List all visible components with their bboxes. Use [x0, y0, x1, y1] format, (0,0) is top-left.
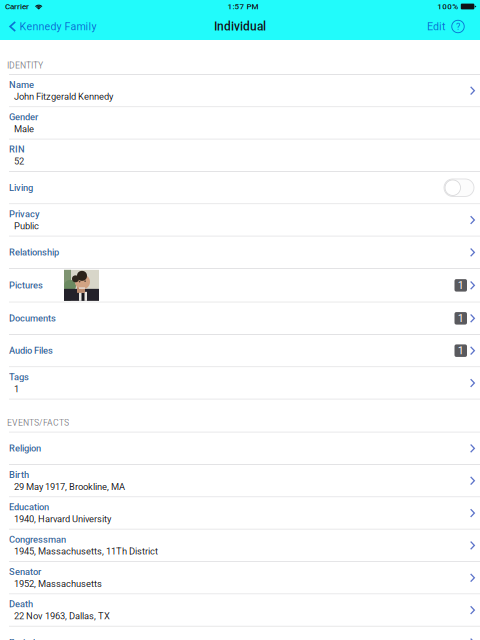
staticText: Carrier [5, 2, 29, 11]
button[interactable]: Audio Files [0, 335, 480, 366]
staticText: Birth [9, 469, 29, 480]
button[interactable]: Relationship [0, 237, 480, 268]
staticText: Relationship [9, 247, 59, 258]
staticText: Pictures [9, 280, 43, 291]
staticText: 1940, Harvard University [14, 514, 111, 524]
staticText: Audio Files [9, 345, 53, 356]
staticText: 29 May 1917, Brookline, MA [14, 481, 125, 492]
staticText: 1 [458, 312, 464, 325]
staticText: Edit [427, 20, 445, 33]
staticText: Buried [9, 637, 35, 640]
button[interactable]: Tags [0, 367, 480, 399]
button[interactable]: Education [0, 497, 480, 529]
staticText: Kennedy Family [19, 20, 96, 33]
staticText: Religion [9, 443, 41, 454]
button[interactable]: Edit [427, 14, 445, 39]
button[interactable]: Senator [0, 562, 480, 593]
staticText: 52 [14, 156, 24, 167]
staticText: Name [9, 79, 34, 90]
staticText: Privacy [9, 209, 40, 219]
staticText: IDENTITY [7, 60, 43, 71]
staticText: Gender [9, 112, 38, 122]
staticText: 1952, Massachusetts [14, 578, 102, 589]
button[interactable]: Help [451, 19, 465, 33]
staticText: 1 [458, 279, 464, 292]
staticText: Education [9, 502, 49, 512]
staticText: 22 Nov 1963, Dallas, TX [14, 611, 110, 621]
staticText: Individual [214, 19, 266, 34]
staticText: 1 [458, 344, 464, 357]
staticText: RIN [9, 144, 25, 155]
button[interactable]: Congressman [0, 530, 480, 561]
staticText: 100% [437, 2, 458, 11]
button[interactable]: Death [0, 594, 480, 626]
staticText: 1:57 PM [228, 2, 259, 11]
staticText: John Fitzgerald Kennedy [14, 91, 113, 102]
staticText: Male [14, 123, 34, 134]
staticText: Congressman [9, 534, 66, 545]
staticText: Tags [9, 372, 29, 382]
staticText: Senator [9, 566, 41, 577]
button[interactable]: Living [0, 172, 480, 203]
button[interactable]: Kennedy Family [0, 14, 96, 39]
staticText: 1 [14, 383, 19, 394]
staticText: Public [14, 220, 39, 231]
staticText: Living [9, 182, 33, 193]
button[interactable]: Privacy [0, 204, 480, 236]
button[interactable]: Name [0, 75, 480, 106]
button[interactable]: Religion [0, 433, 480, 464]
staticText: Death [9, 599, 33, 610]
button[interactable]: Buried [0, 627, 480, 640]
button[interactable]: Pictures [0, 269, 480, 302]
button[interactable]: Documents [0, 303, 480, 334]
staticText: Documents [9, 313, 56, 324]
button[interactable]: Birth [0, 465, 480, 496]
staticText: 1945, Massachusetts, 11Th District [14, 546, 158, 557]
staticText: ? [456, 21, 460, 32]
staticText: EVENTS/FACTS [7, 418, 69, 428]
